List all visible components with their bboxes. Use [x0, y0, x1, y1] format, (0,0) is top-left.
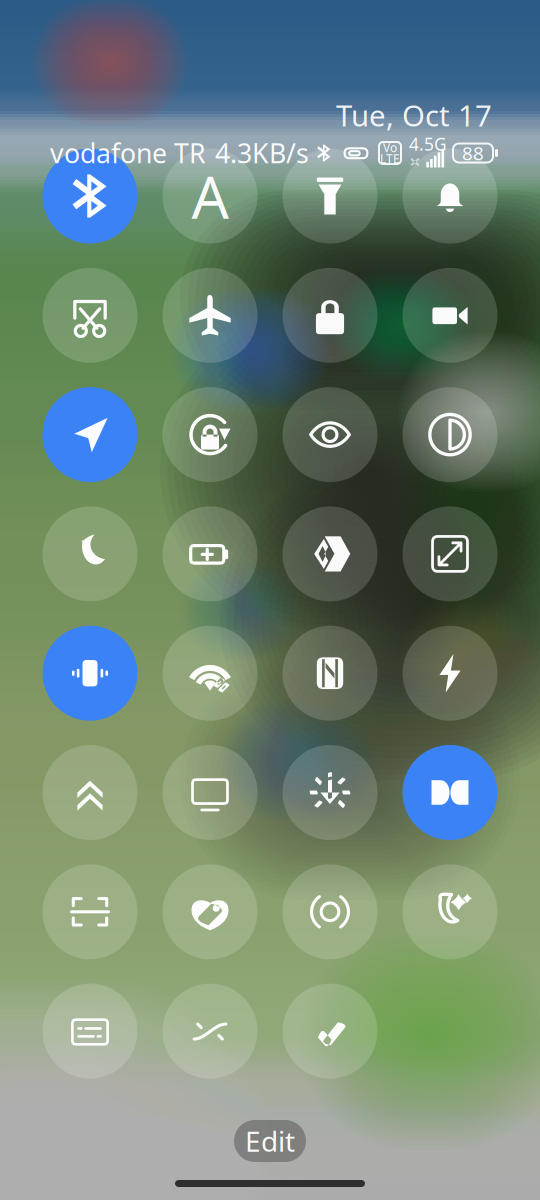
button[interactable]: Hotspot	[270, 852, 390, 971]
staticText: A	[191, 157, 228, 235]
button[interactable]: Shuffle	[150, 971, 270, 1091]
button[interactable]: Do not disturb	[30, 494, 150, 613]
button[interactable]: Eye comfort	[270, 375, 390, 494]
button[interactable]: Scan	[30, 852, 150, 971]
button[interactable]: Flashlight	[270, 136, 390, 256]
button[interactable]: Captions	[30, 971, 150, 1091]
button[interactable]: Bluetooth	[30, 136, 150, 256]
button[interactable]: Aeroplane mode	[150, 256, 270, 375]
button[interactable]: Rotation lock	[150, 375, 270, 494]
button[interactable]: Tasks	[270, 971, 390, 1091]
staticText: Vo	[383, 139, 397, 155]
button[interactable]: Dolby Atmos	[390, 733, 510, 852]
staticText: Edit	[245, 1122, 295, 1160]
staticText: 4.5G	[409, 132, 447, 155]
button[interactable]: Ringer	[390, 136, 510, 256]
staticText: 4.3KB/s	[215, 135, 309, 171]
button[interactable]: Flash	[390, 613, 510, 733]
button[interactable]: Screen resolution	[390, 494, 510, 613]
button[interactable]: Location	[30, 375, 150, 494]
button[interactable]: Lock	[270, 256, 390, 375]
button[interactable]: Edit	[234, 1120, 306, 1162]
staticText: 88	[462, 141, 484, 165]
staticText: LTE	[380, 150, 400, 166]
button[interactable]: Vibration	[30, 613, 150, 733]
button[interactable]: Wi-Fi	[150, 613, 270, 733]
button[interactable]: Boost	[30, 733, 150, 852]
button[interactable]: Health	[150, 852, 270, 971]
button[interactable]: Bedtime mode	[390, 852, 510, 971]
button[interactable]: Smart view	[150, 733, 270, 852]
staticText: Tue, Oct 17	[336, 95, 492, 134]
button[interactable]: Screen cast	[30, 256, 150, 375]
button[interactable]: Font size	[150, 136, 270, 256]
button[interactable]: Screen record	[390, 256, 510, 375]
button[interactable]: Brightness	[270, 733, 390, 852]
button[interactable]: NFC	[270, 613, 390, 733]
staticText: vodafone TR	[50, 135, 206, 171]
button[interactable]: Dark mode	[390, 375, 510, 494]
button[interactable]: Power saving	[150, 494, 270, 613]
button[interactable]: Data saver	[270, 494, 390, 613]
